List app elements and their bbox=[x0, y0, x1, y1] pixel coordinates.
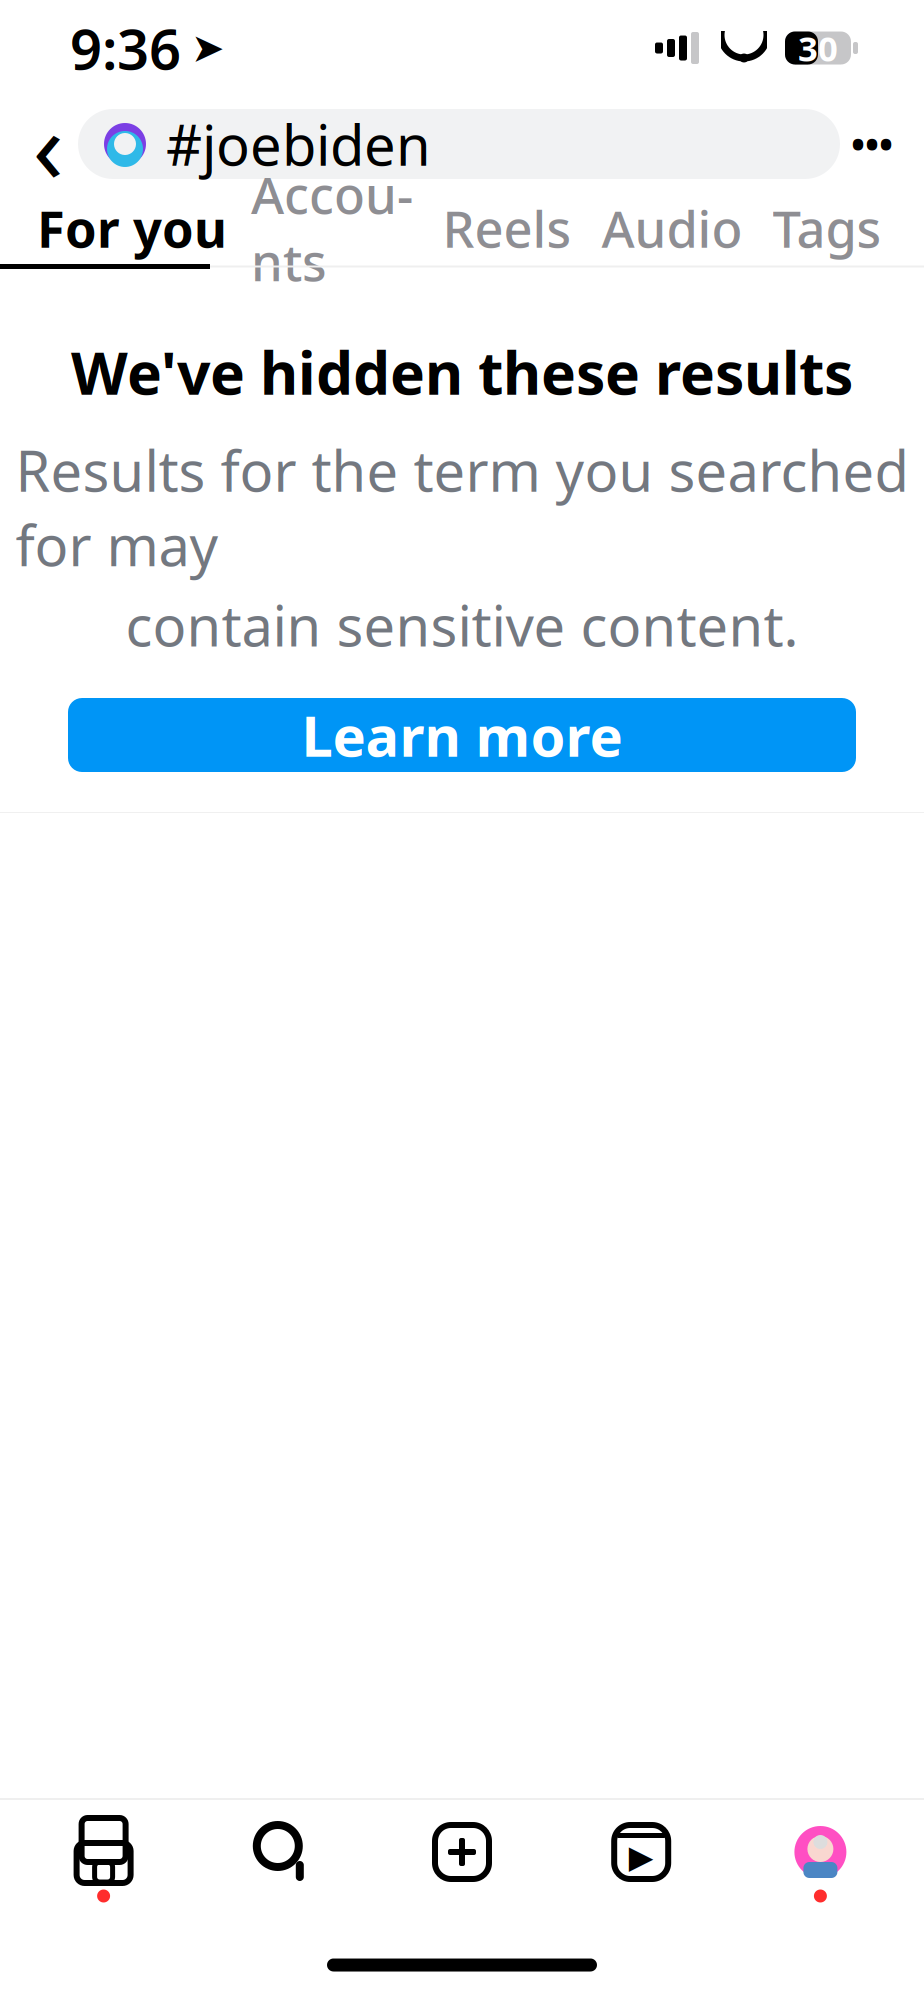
button[interactable]: Tags bbox=[757, 192, 897, 264]
staticText: ‹ bbox=[32, 77, 63, 211]
button[interactable]: For you bbox=[27, 192, 237, 264]
staticText: 9:36 bbox=[70, 11, 181, 85]
staticText: ▶ bbox=[629, 1839, 654, 1875]
staticText: Reels bbox=[442, 194, 571, 262]
button[interactable]: Home bbox=[14, 1800, 193, 1930]
staticText: Audio bbox=[601, 194, 742, 262]
button[interactable]: Back bbox=[18, 109, 78, 179]
button[interactable]: More options bbox=[840, 109, 904, 179]
button[interactable]: Learn more bbox=[68, 698, 856, 772]
button[interactable]: Search bbox=[193, 1800, 372, 1930]
staticText: 30 bbox=[798, 25, 838, 71]
button[interactable]: Audio bbox=[587, 192, 757, 264]
staticText: We've hidden these results bbox=[71, 333, 853, 411]
staticText: Tags bbox=[772, 194, 881, 262]
staticText: Accounts bbox=[251, 161, 413, 295]
staticText: contain sensitive content. bbox=[125, 588, 798, 662]
button[interactable]: #joebiden bbox=[78, 109, 840, 179]
staticText: ➤ bbox=[191, 25, 225, 71]
button[interactable]: Accounts bbox=[237, 192, 427, 264]
staticText: ••• bbox=[851, 119, 893, 169]
button[interactable]: Reels bbox=[552, 1800, 731, 1930]
staticText: Learn more bbox=[301, 698, 622, 772]
button[interactable]: Create bbox=[372, 1800, 552, 1930]
staticText: #joebiden bbox=[166, 107, 431, 181]
staticText: Results for the term you searched for ma… bbox=[15, 433, 908, 582]
button[interactable]: Reels bbox=[427, 192, 587, 264]
staticText: For you bbox=[37, 194, 227, 262]
button[interactable]: Profile bbox=[731, 1800, 910, 1930]
